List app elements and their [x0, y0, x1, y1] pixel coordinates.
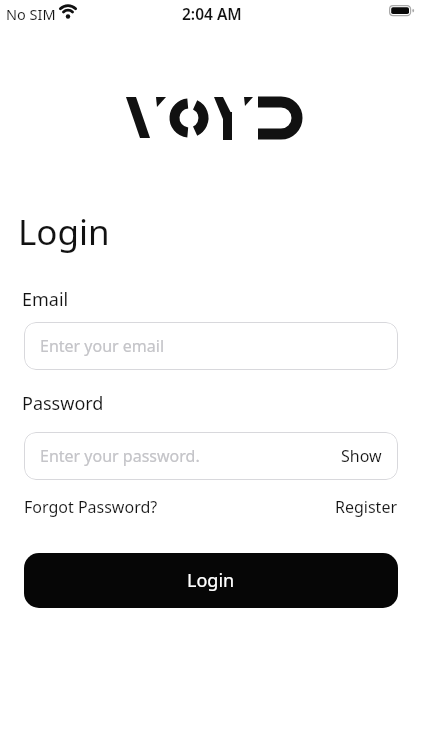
staticText: Enter your password. [40, 445, 200, 467]
staticText: No SIM [6, 4, 56, 24]
button[interactable]: Forgot Password? [24, 496, 158, 518]
staticText: Enter your email [40, 335, 165, 357]
button[interactable]: Register [335, 496, 398, 518]
staticText: Login [187, 568, 235, 593]
staticText: Email [22, 287, 69, 312]
staticText: Password [22, 391, 104, 416]
button[interactable]: Enter your email [24, 322, 398, 370]
button[interactable]: Enter your password. [24, 432, 398, 480]
button[interactable]: Show [341, 445, 382, 467]
button[interactable]: Login [24, 553, 398, 608]
staticText: 2:04 AM [182, 3, 242, 24]
staticText: Login [18, 208, 110, 256]
